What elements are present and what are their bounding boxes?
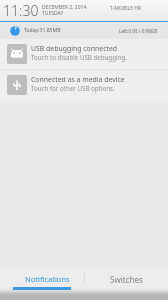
staticText: USB debugging connected <box>31 44 118 53</box>
button[interactable]: Switches <box>84 267 168 291</box>
staticText: 11:30 <box>3 1 39 20</box>
staticText: Left:0.95 / 0.98GB <box>119 28 158 34</box>
button[interactable]: Connected as a media device <box>0 70 168 100</box>
staticText: Touch for other USB options. <box>31 84 115 92</box>
button[interactable]: USB debugging connected <box>0 39 168 69</box>
staticText: Today:31.85MB <box>24 27 61 34</box>
button[interactable]: Notifications <box>0 267 84 291</box>
staticText: DECEMBER 2, 2014 <box>42 4 87 11</box>
staticText: Touch to disable USB debugging. <box>31 53 127 61</box>
staticText: Notifications <box>25 274 70 284</box>
button[interactable]: Today:31.85MB <box>0 22 168 39</box>
staticText: T-MOBILE HR <box>110 5 142 12</box>
staticText: Connected as a media device <box>31 75 125 84</box>
staticText: Switches <box>110 274 143 285</box>
staticText: TUESDAY <box>42 10 64 17</box>
